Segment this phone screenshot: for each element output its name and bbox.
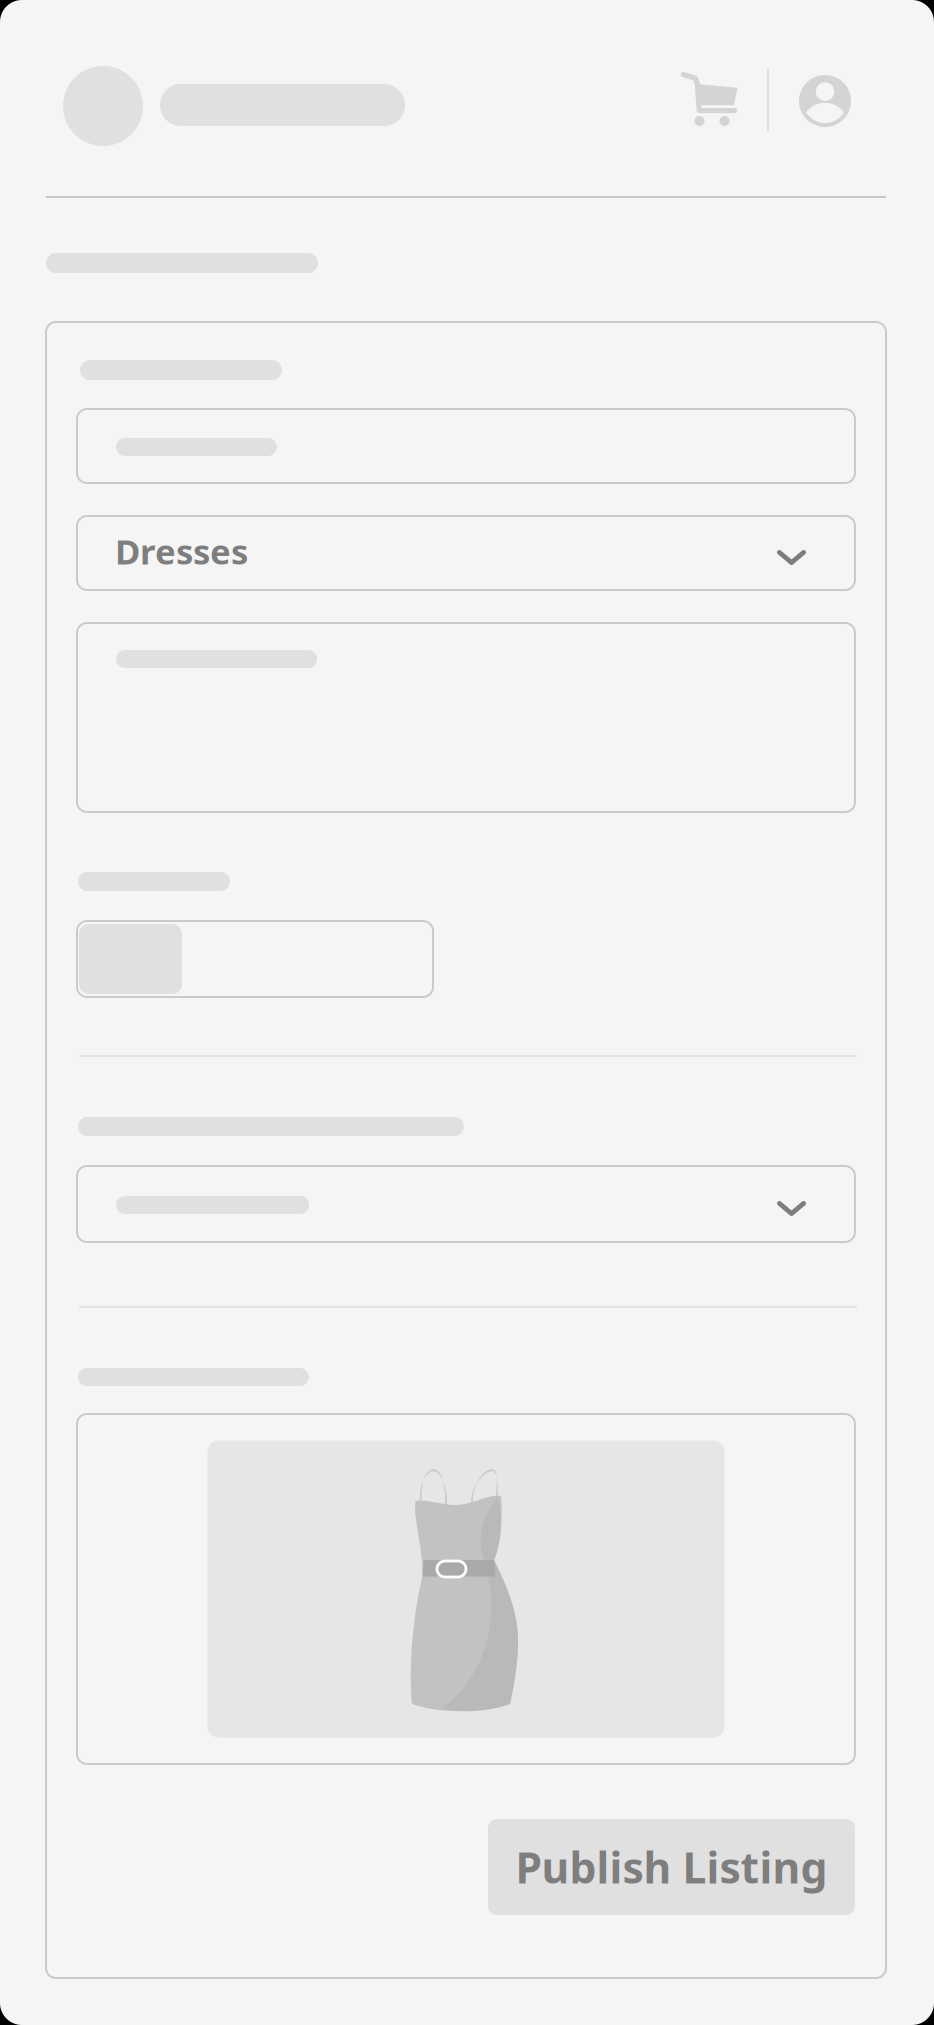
- button[interactable]: Account: [799, 75, 851, 127]
- button[interactable]: Profile photo: [63, 66, 143, 146]
- button[interactable]: Store name: [160, 84, 405, 126]
- button[interactable]: Publish Listing: [488, 1819, 855, 1915]
- button[interactable]: [77, 1166, 855, 1242]
- button[interactable]: Cart: [683, 74, 741, 130]
- staticText: Dresses: [115, 528, 248, 574]
- button[interactable]: Product photo: [77, 1414, 855, 1764]
- button[interactable]: Dresses: [77, 516, 855, 590]
- staticText: Publish Listing: [515, 1839, 827, 1895]
